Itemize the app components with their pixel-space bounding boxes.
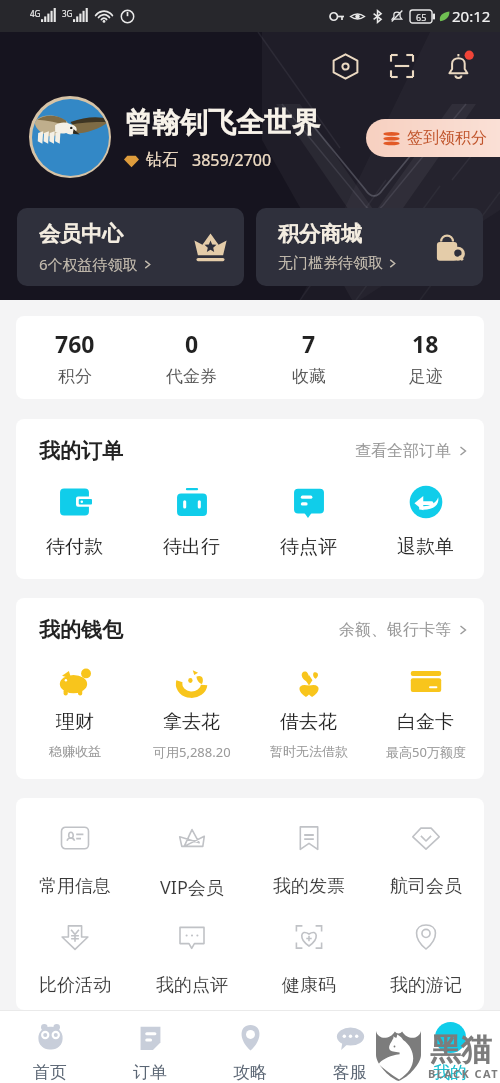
button[interactable]: 7 xyxy=(250,316,367,399)
staticText: 4G xyxy=(30,8,41,19)
staticText: 订单 xyxy=(133,1062,167,1083)
staticText: 拿去花 xyxy=(163,710,220,734)
button[interactable]: 拿去花 xyxy=(133,662,250,761)
button[interactable]: 760 xyxy=(16,316,133,399)
staticText: VIP会员 xyxy=(160,875,224,900)
button[interactable]: 健康码 xyxy=(250,922,367,997)
button[interactable]: 白金卡 xyxy=(367,662,484,761)
staticText: 余额、银行卡等 xyxy=(339,620,451,640)
button[interactable]: 客服 xyxy=(300,1011,400,1083)
staticText: 我的订单 xyxy=(39,438,123,464)
staticText: 760 xyxy=(55,328,95,359)
staticText: 3G xyxy=(62,8,73,19)
staticText: 稳赚收益 xyxy=(49,743,101,759)
staticText: 我的点评 xyxy=(156,974,228,997)
staticText: 签到领积分 xyxy=(407,128,487,148)
staticText: 查看全部订单 xyxy=(355,441,451,461)
button[interactable]: 18 xyxy=(367,316,484,399)
button[interactable]: 积分商城 xyxy=(256,208,483,286)
staticText: 航司会员 xyxy=(390,875,462,898)
button[interactable]: 借去花 xyxy=(250,662,367,759)
staticText: 退款单 xyxy=(397,535,454,559)
button[interactable]: VIP会员 xyxy=(133,823,250,900)
staticText: 我的游记 xyxy=(390,974,462,997)
staticText: 攻略 xyxy=(233,1062,267,1083)
button[interactable]: Avatar xyxy=(29,96,111,178)
button[interactable]: 我的 xyxy=(400,1011,500,1083)
staticText: 6个权益待领取 xyxy=(39,254,138,274)
staticText: 18 xyxy=(412,328,439,359)
staticText: 客服 xyxy=(333,1062,367,1083)
staticText: 暂时无法借款 xyxy=(270,743,348,759)
button[interactable]: 航司会员 xyxy=(367,823,484,898)
button[interactable]: 我的发票 xyxy=(250,823,367,898)
staticText: 65 xyxy=(416,11,427,23)
staticText: 我的 xyxy=(433,1062,467,1083)
staticText: 积分 xyxy=(58,366,92,387)
staticText: 收藏 xyxy=(292,366,326,387)
button[interactable]: 首页 xyxy=(0,1011,100,1083)
staticText: BLACK CAT xyxy=(428,1066,499,1081)
staticText: 常用信息 xyxy=(39,875,111,898)
button[interactable]: 订单 xyxy=(100,1011,200,1083)
staticText: 代金券 xyxy=(166,366,217,387)
button[interactable]: 待出行 xyxy=(133,485,250,559)
staticText: 比价活动 xyxy=(39,974,111,997)
button[interactable]: 查看全部订单 xyxy=(353,437,470,465)
button[interactable]: 待点评 xyxy=(250,485,367,559)
staticText: 曾翰钊飞全世界 xyxy=(124,105,320,140)
button[interactable]: 我的点评 xyxy=(133,922,250,997)
staticText: 待点评 xyxy=(280,535,337,559)
staticText: 待出行 xyxy=(163,535,220,559)
staticText: 健康码 xyxy=(282,974,336,997)
staticText: 足迹 xyxy=(409,366,443,387)
button[interactable]: 退款单 xyxy=(367,485,484,559)
staticText: 理财 xyxy=(56,710,94,734)
button[interactable]: 比价活动 xyxy=(16,922,133,997)
button[interactable]: 余额、银行卡等 xyxy=(337,616,470,644)
button[interactable]: 会员中心 xyxy=(17,208,244,286)
button[interactable]: 理财 xyxy=(16,662,133,759)
staticText: 3859/2700 xyxy=(192,149,272,171)
button[interactable]: 我的游记 xyxy=(367,922,484,997)
button[interactable]: 待付款 xyxy=(16,485,133,559)
staticText: 黑猫 xyxy=(430,1030,492,1069)
staticText: 可用5,288.20 xyxy=(153,743,231,761)
button[interactable]: Scan xyxy=(380,44,424,88)
staticText: 7 xyxy=(302,328,316,359)
staticText: 0 xyxy=(185,328,199,359)
button[interactable]: Membership xyxy=(323,44,367,88)
button[interactable]: Notifications xyxy=(437,44,481,88)
staticText: 钻石 xyxy=(146,150,178,170)
staticText: 待付款 xyxy=(46,535,103,559)
button[interactable]: 0 xyxy=(133,316,250,399)
button[interactable]: 签到领积分 xyxy=(366,119,500,157)
staticText: 白金卡 xyxy=(397,710,454,734)
staticText: 最高50万额度 xyxy=(386,743,466,761)
staticText: 20:12 xyxy=(452,6,491,26)
staticText: 无门槛券待领取 xyxy=(278,254,383,273)
button[interactable]: 攻略 xyxy=(200,1011,300,1083)
staticText: 会员中心 xyxy=(39,221,123,247)
staticText: 我的发票 xyxy=(273,875,345,898)
staticText: 我的钱包 xyxy=(39,617,123,643)
staticText: 借去花 xyxy=(280,710,337,734)
staticText: 积分商城 xyxy=(278,221,362,247)
button[interactable]: 常用信息 xyxy=(16,823,133,898)
staticText: 首页 xyxy=(33,1062,67,1083)
